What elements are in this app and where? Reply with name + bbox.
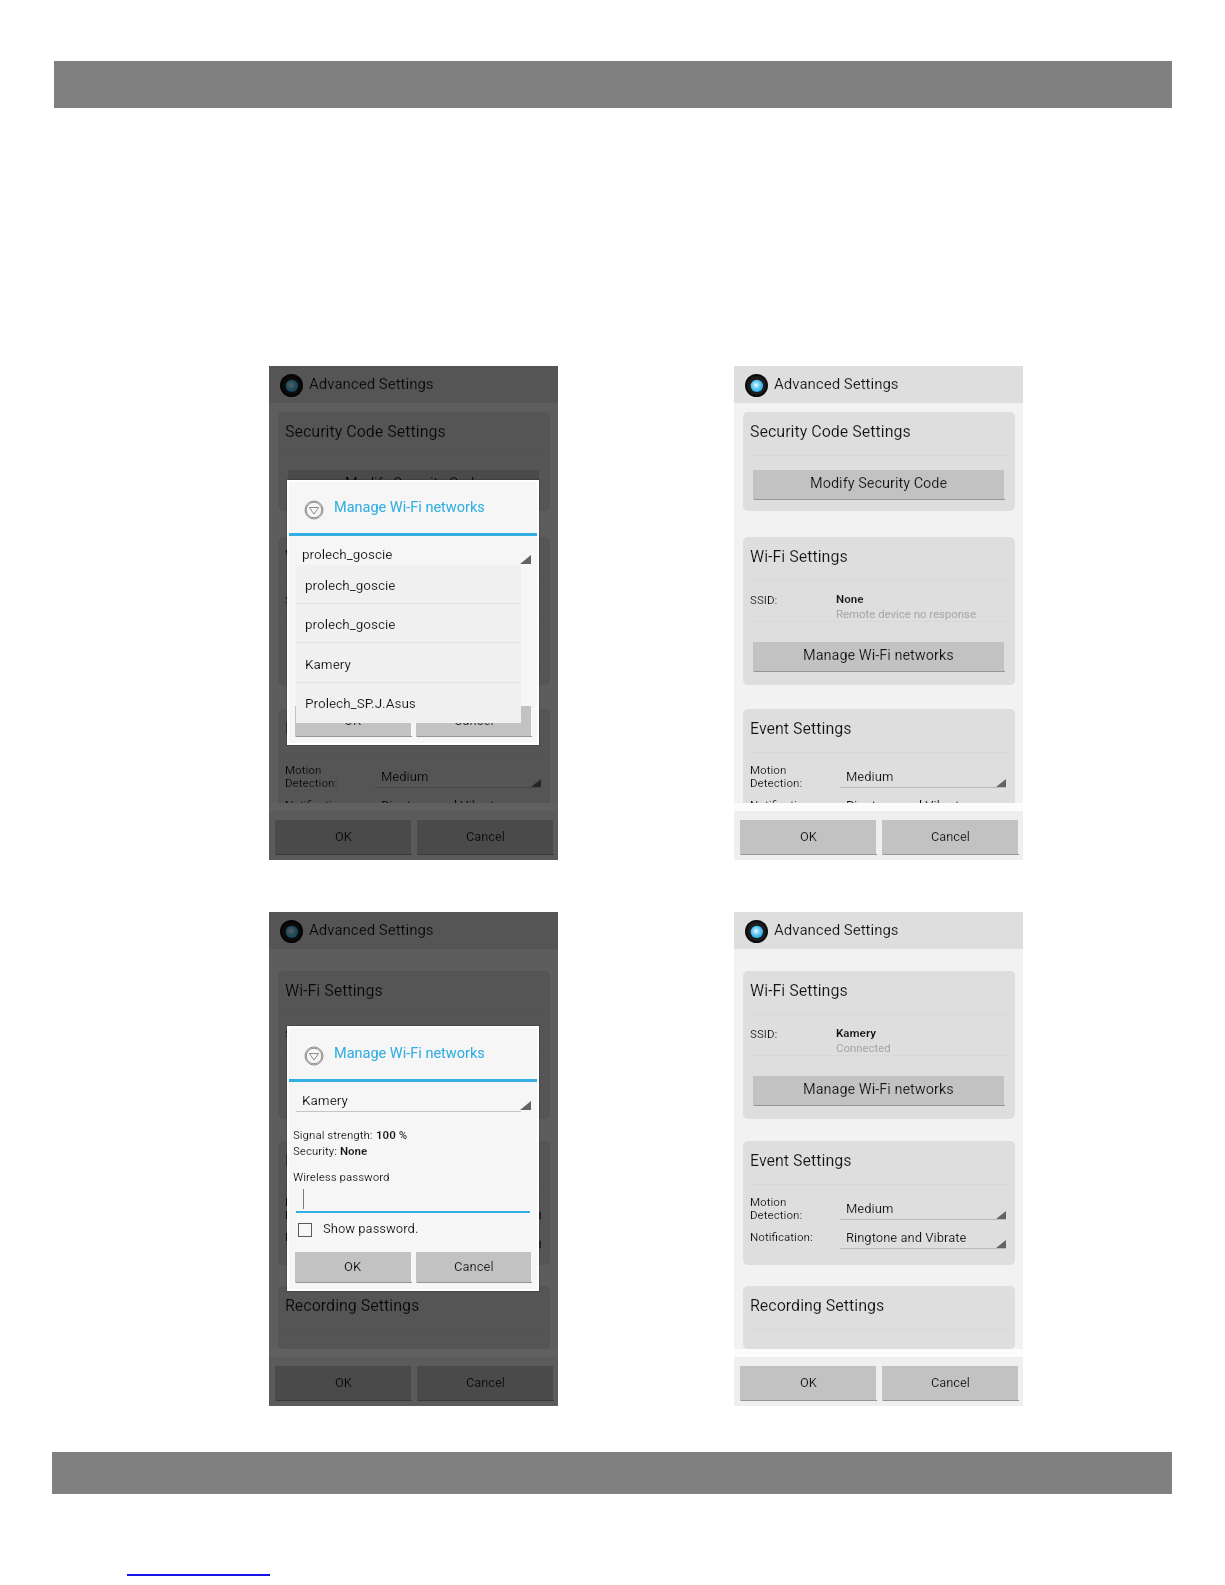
staticText: Wi-Fi Settings [750,547,848,566]
staticText: Modify Security Code [345,475,483,492]
staticText: Prolech_SP.J.Asus [305,695,416,711]
staticText: SSID: [285,593,313,607]
staticText: Manage Wi-Fi networks [338,1081,489,1098]
staticText: None [371,592,399,606]
button[interactable]: OK [295,706,411,737]
staticText: Motion [750,763,787,777]
staticText: Connected [371,1041,426,1054]
staticText: Wi-Fi Settings [285,981,383,1000]
button[interactable]: Modify Security Code [753,470,1004,500]
staticText: SSID: [750,1027,778,1041]
button[interactable]: Manage Wi-Fi networks [288,1076,539,1106]
staticText: prolech_goscie [305,616,396,632]
staticText: Kamery [836,1026,877,1040]
button[interactable]: Prolech_SP.J.Asus [296,683,521,722]
button[interactable]: Modify Security Code [288,470,539,500]
button[interactable]: Show password [298,1223,312,1237]
staticText: Cancel [931,829,970,844]
staticText: Recording Settings [285,1296,420,1315]
button[interactable]: Cancel [416,1252,531,1283]
staticText: None [836,592,864,606]
button[interactable]: Advanced Settings [734,912,1023,949]
button[interactable]: prolech_goscie [296,604,521,643]
staticText: Motion [285,763,322,777]
staticText: Manage Wi-Fi networks [334,499,485,516]
staticText: Kamery [305,656,351,672]
staticText: Manage Wi-Fi networks [338,647,489,664]
button[interactable]: OK [295,1252,411,1283]
staticText: Security Code Settings [750,422,911,441]
staticText: Remote device no response [836,607,977,620]
button[interactable]: Cancel [417,1366,553,1401]
staticText: Detection: [750,776,803,790]
staticText: Recording Settings [750,1296,885,1315]
staticText: Advanced Settings [774,375,899,393]
button[interactable]: Kamery [296,644,521,683]
staticText: Detection: [285,1208,338,1222]
staticText: Cancel [466,829,505,844]
staticText: OK [335,829,352,844]
staticText: Advanced Settings [309,921,434,939]
staticText: Advanced Settings [774,921,899,939]
staticText: Detection: [750,1208,803,1222]
button[interactable]: Cancel [417,820,553,855]
button[interactable]: Advanced Settings [269,912,558,949]
staticText: Manage Wi-Fi networks [803,647,954,664]
button[interactable]: OK [740,1366,876,1401]
button[interactable]: Cancel [882,820,1018,855]
staticText: OK [344,713,362,728]
staticText: Notification: [750,798,813,803]
staticText: Notification: [750,1230,813,1244]
staticText: Kamery [302,1092,348,1108]
button[interactable]: Manage Wi-Fi networks [753,1076,1004,1106]
staticText: Cancel [931,1375,970,1390]
button[interactable]: Cancel [416,706,531,737]
staticText: Wi-Fi Settings [750,981,848,1000]
staticText: Event Settings [750,1151,852,1170]
staticText: Manage Wi-Fi networks [334,1045,485,1062]
staticText: Ringtone and Vibrate [846,1230,967,1245]
staticText: 100 % [376,1128,408,1141]
staticText: None [340,1144,368,1157]
staticText: Detection: [285,776,338,790]
staticText: Connected [836,1041,891,1054]
staticText: Motion [285,1195,322,1209]
staticText: Motion [750,1195,787,1209]
staticText: Manage Wi-Fi networks [803,1081,954,1098]
staticText: SSID: [285,1027,313,1041]
staticText: Show password. [323,1221,419,1236]
staticText: Cancel [454,713,494,728]
staticText: Security: [293,1144,340,1157]
staticText: Kamery [371,1026,412,1040]
staticText: Modify Security Code [810,475,948,492]
button[interactable]: Advanced Settings [269,366,558,403]
button[interactable]: OK [275,820,411,855]
button[interactable]: Manage Wi-Fi networks [753,642,1004,672]
staticText: Medium [846,769,894,784]
staticText: OK [344,1259,362,1274]
staticText: Ringtone and Vibrate [846,798,967,803]
staticText: Notification: [285,798,348,803]
button[interactable]: OK [740,820,876,855]
button[interactable]: prolech_goscie [296,565,521,604]
staticText: prolech_goscie [302,546,393,562]
staticText: Medium [381,769,429,784]
staticText: Event Settings [285,719,387,738]
staticText: Cancel [454,1259,494,1274]
staticText: Event Settings [750,719,852,738]
button[interactable]: Cancel [882,1366,1018,1401]
staticText: OK [800,1375,817,1390]
button[interactable]: Advanced Settings [734,366,1023,403]
staticText: Wi-Fi Settings [285,547,383,566]
staticText: Notification: [285,1230,348,1244]
staticText: Advanced Settings [309,375,434,393]
staticText: SSID: [750,593,778,607]
staticText: OK [800,829,817,844]
staticText: Event Settings [285,1151,387,1170]
staticText: Medium [381,1201,429,1216]
button[interactable]: Manage Wi-Fi networks [288,642,539,672]
staticText: Cancel [466,1375,505,1390]
staticText: OK [335,1375,352,1390]
button[interactable]: OK [275,1366,411,1401]
